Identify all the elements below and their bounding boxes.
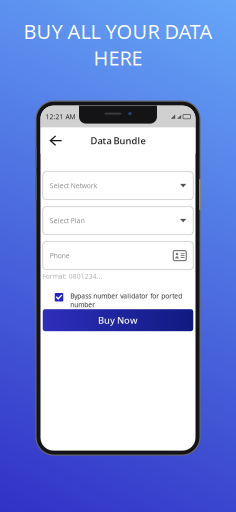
staticText: Bypass number validator for ported numbe…: [70, 291, 182, 309]
staticText: Buy Now: [98, 314, 138, 326]
button[interactable]: Bypass number validator for ported numbe…: [43, 280, 193, 309]
staticText: Select Network: [50, 181, 98, 190]
staticText: Format: 0801234...: [43, 272, 103, 280]
staticText: Phone: [50, 251, 70, 260]
button[interactable]: Phone: [43, 242, 193, 270]
button[interactable]: Select Network: [43, 172, 193, 200]
staticText: 12:21 AM: [45, 112, 75, 121]
staticText: Data Bundle: [90, 134, 145, 147]
staticText: HERE: [93, 45, 142, 71]
button[interactable]: Select Plan: [43, 207, 193, 235]
button[interactable]: Buy Now: [43, 309, 193, 331]
staticText: Select Plan: [50, 216, 85, 225]
button[interactable]: Back: [46, 132, 64, 150]
staticText: BUY ALL YOUR DATA: [23, 18, 212, 45]
